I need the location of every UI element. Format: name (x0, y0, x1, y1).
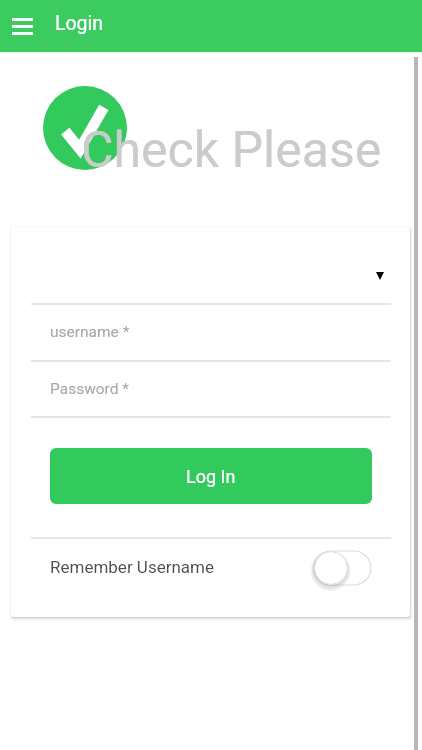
button[interactable]: Select organisation (11, 227, 410, 303)
button[interactable]: Password * (11, 361, 410, 417)
staticText: Login (55, 12, 104, 35)
button[interactable]: Open navigation menu (0, 0, 44, 52)
staticText: username * (50, 323, 130, 341)
staticText: Password * (50, 380, 129, 398)
button[interactable]: Log In (50, 448, 372, 504)
staticText: Log In (186, 466, 236, 487)
staticText: Check Please (81, 121, 382, 180)
staticText: Remember Username (50, 557, 214, 577)
button[interactable]: username * (11, 304, 410, 360)
button[interactable]: Remember Username (11, 538, 410, 617)
